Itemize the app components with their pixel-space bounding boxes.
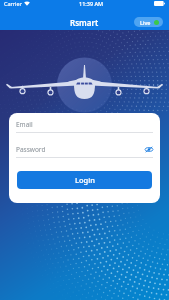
staticText: Password: [16, 145, 46, 154]
staticText: 11:39 AM: [79, 0, 104, 7]
staticText: Login: [75, 175, 95, 185]
staticText: Email: [16, 120, 33, 129]
button[interactable]: Email: [16, 120, 153, 133]
button[interactable]: Password: [16, 145, 153, 158]
staticText: Carrier: [4, 0, 22, 7]
button[interactable]: Login: [17, 171, 152, 189]
button[interactable]: Live: [134, 17, 163, 27]
staticText: Live: [140, 19, 151, 26]
staticText: Rsmart: [70, 17, 99, 28]
other: Show password: [145, 146, 153, 153]
